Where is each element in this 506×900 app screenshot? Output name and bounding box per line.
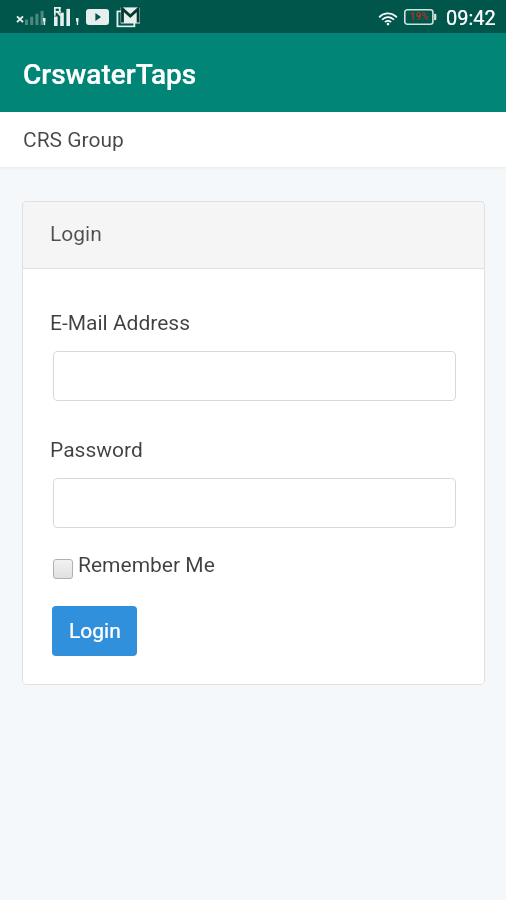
staticText: Password — [50, 438, 143, 463]
staticText: CRS Group — [23, 128, 124, 153]
other: YouTube — [86, 9, 109, 25]
button[interactable] — [53, 478, 456, 528]
staticText: Login — [50, 222, 102, 247]
button[interactable] — [53, 351, 456, 401]
button[interactable]: Remember Me — [50, 553, 215, 578]
other: Battery 19 percent — [404, 9, 437, 25]
staticText: 19% — [410, 11, 429, 23]
staticText: CrswaterTaps — [23, 58, 197, 91]
other: Wi-Fi — [377, 10, 399, 26]
staticText: Remember Me — [78, 553, 215, 578]
staticText: E-Mail Address — [50, 311, 191, 336]
staticText: 09:42 — [446, 6, 496, 29]
staticText: Login — [69, 619, 121, 644]
button[interactable]: CRS Group — [0, 118, 147, 163]
button[interactable]: Login — [52, 606, 137, 656]
other: Gmail — [116, 6, 142, 29]
